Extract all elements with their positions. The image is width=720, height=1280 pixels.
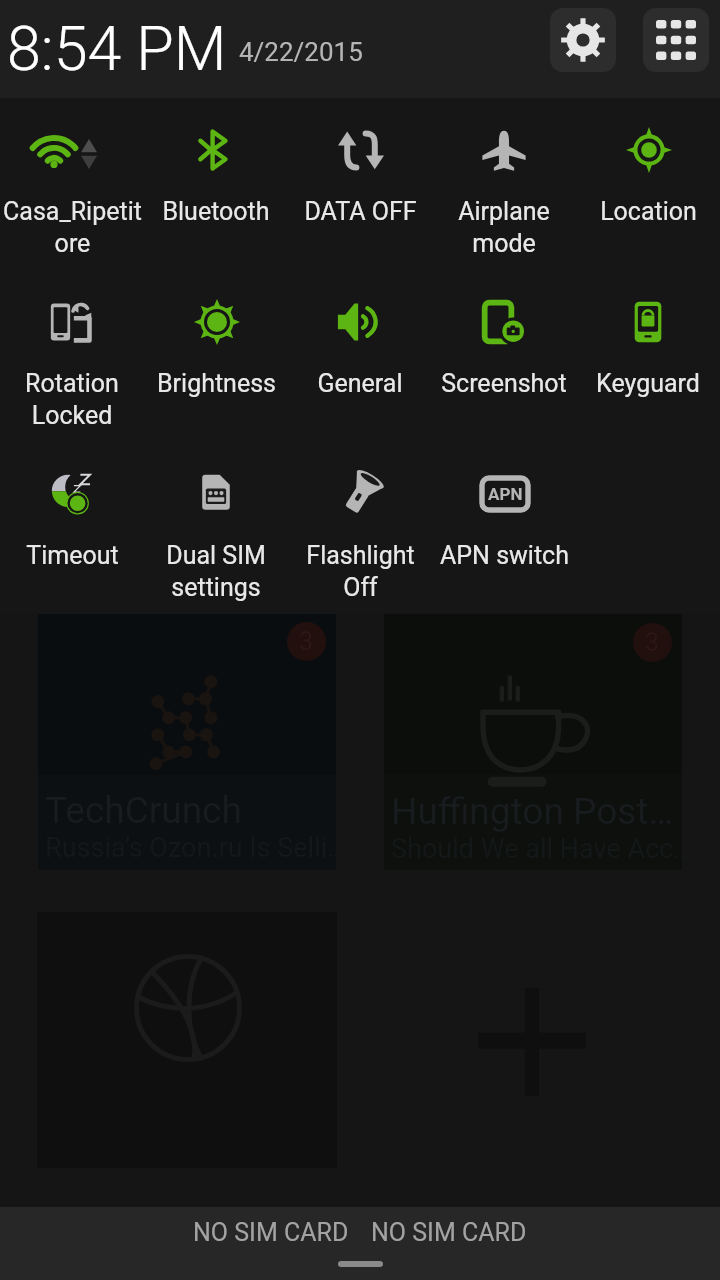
staticText: 4/22/2015 xyxy=(239,37,363,67)
button[interactable]: Location xyxy=(576,98,720,270)
button[interactable]: Screenshot xyxy=(432,270,576,442)
button[interactable]: Keyguard xyxy=(576,270,720,442)
staticText: Huffington Post… xyxy=(391,790,674,833)
staticText: General xyxy=(317,369,403,398)
button[interactable]: Settings xyxy=(550,8,616,72)
button[interactable]: DATA OFF xyxy=(288,98,432,270)
button[interactable]: Casa_Ripetit ore xyxy=(0,98,144,270)
staticText: Brightness xyxy=(157,369,276,398)
button[interactable]: Bluetooth xyxy=(144,98,288,270)
button[interactable]: All settings xyxy=(643,8,709,72)
staticText: Casa_Ripetit ore xyxy=(3,197,142,258)
staticText: DATA OFF xyxy=(304,197,417,226)
staticText: ‘X-Men’ I… xyxy=(558,548,664,580)
button[interactable]: Rotation Locked xyxy=(0,270,144,442)
staticText: Ente… xyxy=(558,505,656,548)
staticText: NO SIM CARD xyxy=(193,1218,349,1247)
staticText: Location xyxy=(600,197,697,226)
staticText: APN xyxy=(488,484,523,504)
button[interactable]: Airplane mode xyxy=(432,98,576,270)
staticText: 8:54 PM xyxy=(7,13,227,84)
button[interactable]: Timeout xyxy=(0,442,144,614)
staticText: Rotation Locked xyxy=(25,369,119,430)
button[interactable]: APN xyxy=(432,442,576,614)
staticText: NO SIM CARD xyxy=(371,1218,527,1247)
button[interactable]: Flashlight Off xyxy=(288,442,432,614)
staticText: TechCrunch xyxy=(45,789,242,832)
staticText: Should We all Have Acc… xyxy=(391,833,689,865)
staticText: Dual SIM settings xyxy=(166,541,266,602)
button[interactable]: Brightness xyxy=(144,270,288,442)
staticText: Flashlight Off xyxy=(306,541,415,602)
button[interactable]: General xyxy=(288,270,432,442)
button[interactable]: Dual SIM settings xyxy=(144,442,288,614)
staticText: APN switch xyxy=(440,541,569,570)
staticText: Keyguard xyxy=(596,369,700,398)
staticText: 3 xyxy=(299,627,314,656)
staticText: 3 xyxy=(645,628,660,657)
staticText: Screenshot xyxy=(441,369,567,398)
staticText: Bluetooth xyxy=(162,197,270,226)
staticText: Timeout xyxy=(26,541,119,570)
staticText: Airplane mode xyxy=(458,197,550,258)
